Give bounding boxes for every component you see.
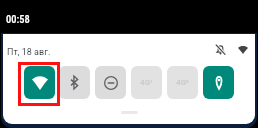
staticText: Пт, 18 авг. [7, 47, 51, 58]
button[interactable]: Wi-Fi signal [238, 46, 248, 54]
button[interactable]: Notifications silenced [216, 45, 225, 55]
staticText: 4G¹ [140, 78, 153, 87]
button[interactable]: Mobile data SIM 2 [167, 66, 198, 99]
button[interactable]: Wi-Fi [24, 66, 55, 99]
button[interactable]: Do not disturb [95, 66, 126, 99]
staticText: 4G² [176, 78, 189, 87]
staticText: 00:58 [6, 13, 30, 25]
button[interactable]: Bluetooth [59, 66, 90, 99]
button[interactable]: Location [203, 66, 234, 99]
button[interactable]: Mobile data SIM 1 [131, 66, 162, 99]
